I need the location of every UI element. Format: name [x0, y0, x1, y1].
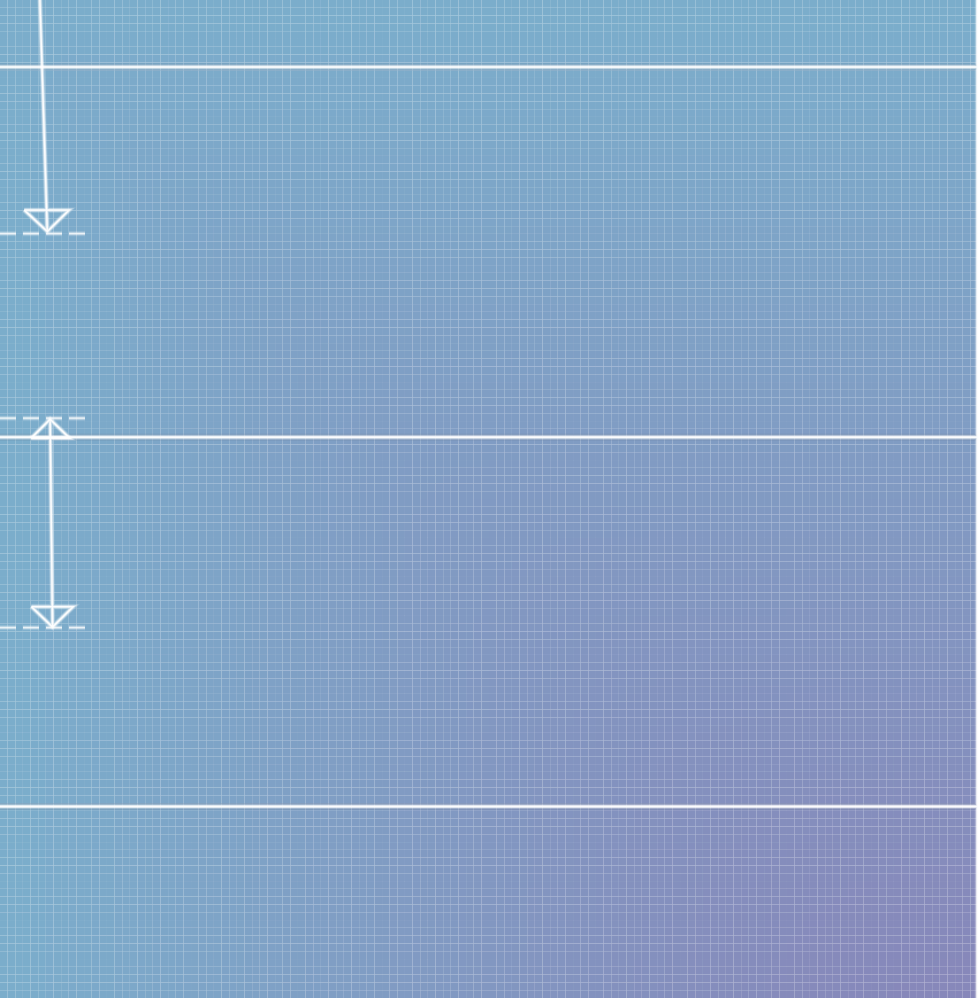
button[interactable]: Section spacing measurement	[0, 0, 978, 998]
button[interactable]: Top inset measurement	[0, 0, 978, 998]
